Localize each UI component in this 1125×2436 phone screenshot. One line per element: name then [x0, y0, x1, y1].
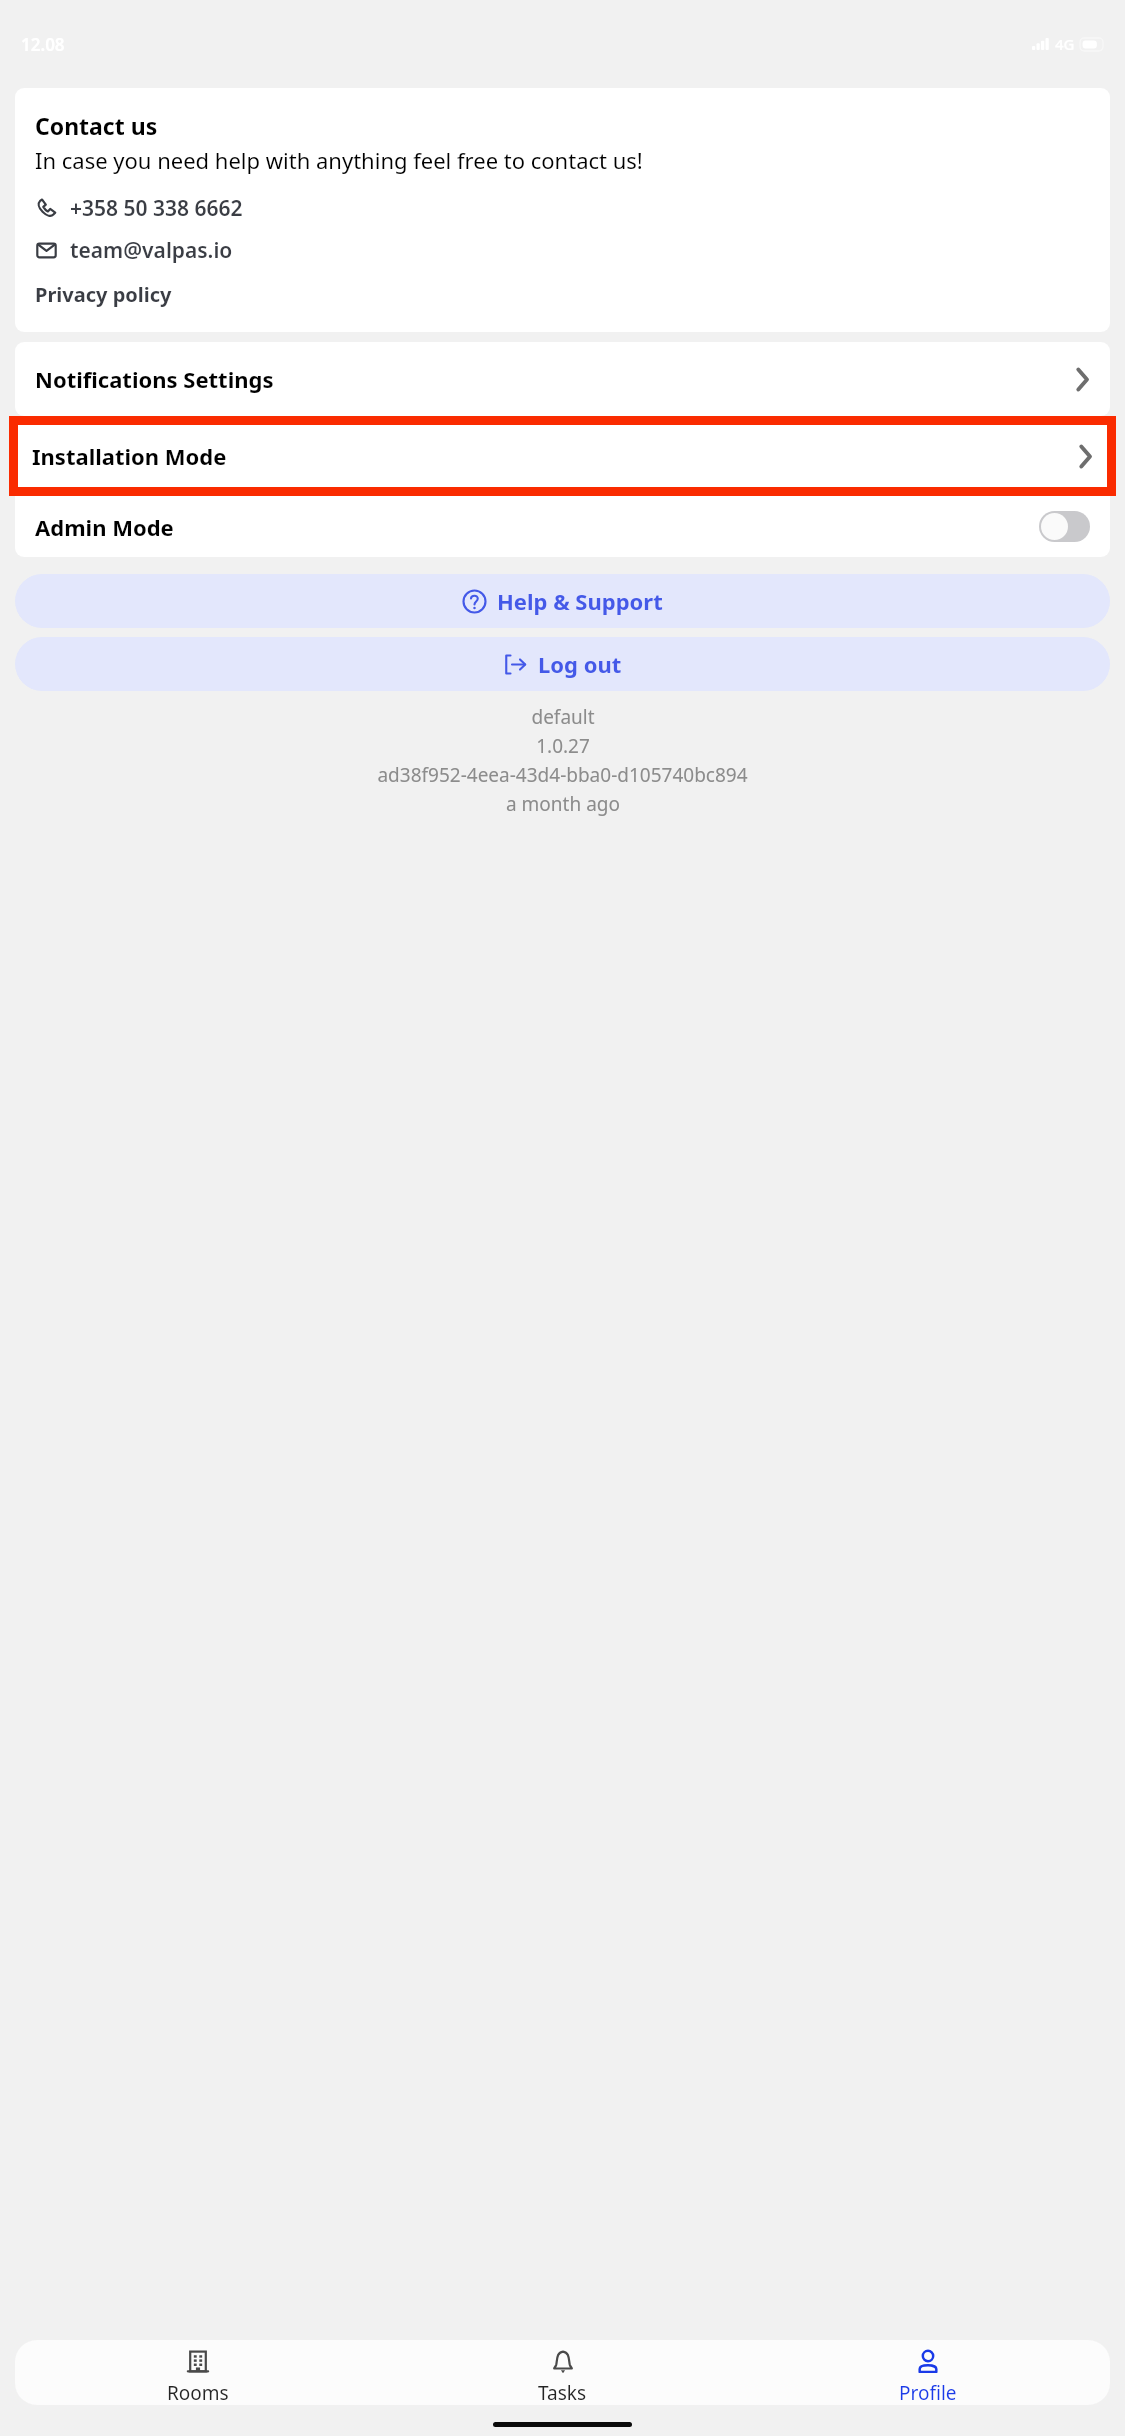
staticText: Contact us	[35, 110, 158, 141]
staticText: 4G	[1055, 34, 1075, 54]
staticText: 12.08	[21, 33, 65, 56]
button[interactable]: Log out	[15, 637, 1110, 691]
staticText: Tasks	[538, 2380, 587, 2405]
button[interactable]: Admin Mode toggle	[1039, 511, 1090, 542]
button[interactable]: +358 50 338 6662	[35, 194, 243, 223]
staticText: Rooms	[167, 2380, 229, 2405]
button[interactable]: Tasks	[380, 2340, 745, 2405]
button[interactable]: team@valpas.io	[35, 236, 233, 265]
button[interactable]: Notifications Settings	[15, 342, 1110, 416]
staticText: default	[531, 704, 595, 730]
staticText: Installation Mode	[32, 441, 1078, 471]
staticText: Help & Support	[497, 586, 663, 616]
staticText: Admin Mode	[35, 512, 1039, 542]
staticText: +358 50 338 6662	[70, 194, 243, 223]
button[interactable]: Help & Support	[15, 574, 1110, 628]
staticText: a month ago	[506, 791, 620, 817]
staticText: Profile	[899, 2380, 957, 2405]
button[interactable]: Privacy policy	[35, 281, 172, 308]
staticText: team@valpas.io	[70, 236, 233, 265]
button[interactable]: Installation Mode	[18, 425, 1107, 487]
staticText: Notifications Settings	[35, 364, 1075, 394]
staticText: Log out	[538, 649, 622, 679]
staticText: 1.0.27	[536, 733, 590, 759]
staticText: In case you need help with anything feel…	[35, 145, 643, 175]
button[interactable]: Profile	[745, 2340, 1110, 2405]
button[interactable]: Admin Mode	[15, 496, 1110, 557]
staticText: ad38f952-4eea-43d4-bba0-d105740bc894	[377, 762, 748, 788]
button[interactable]: Rooms	[15, 2340, 380, 2405]
